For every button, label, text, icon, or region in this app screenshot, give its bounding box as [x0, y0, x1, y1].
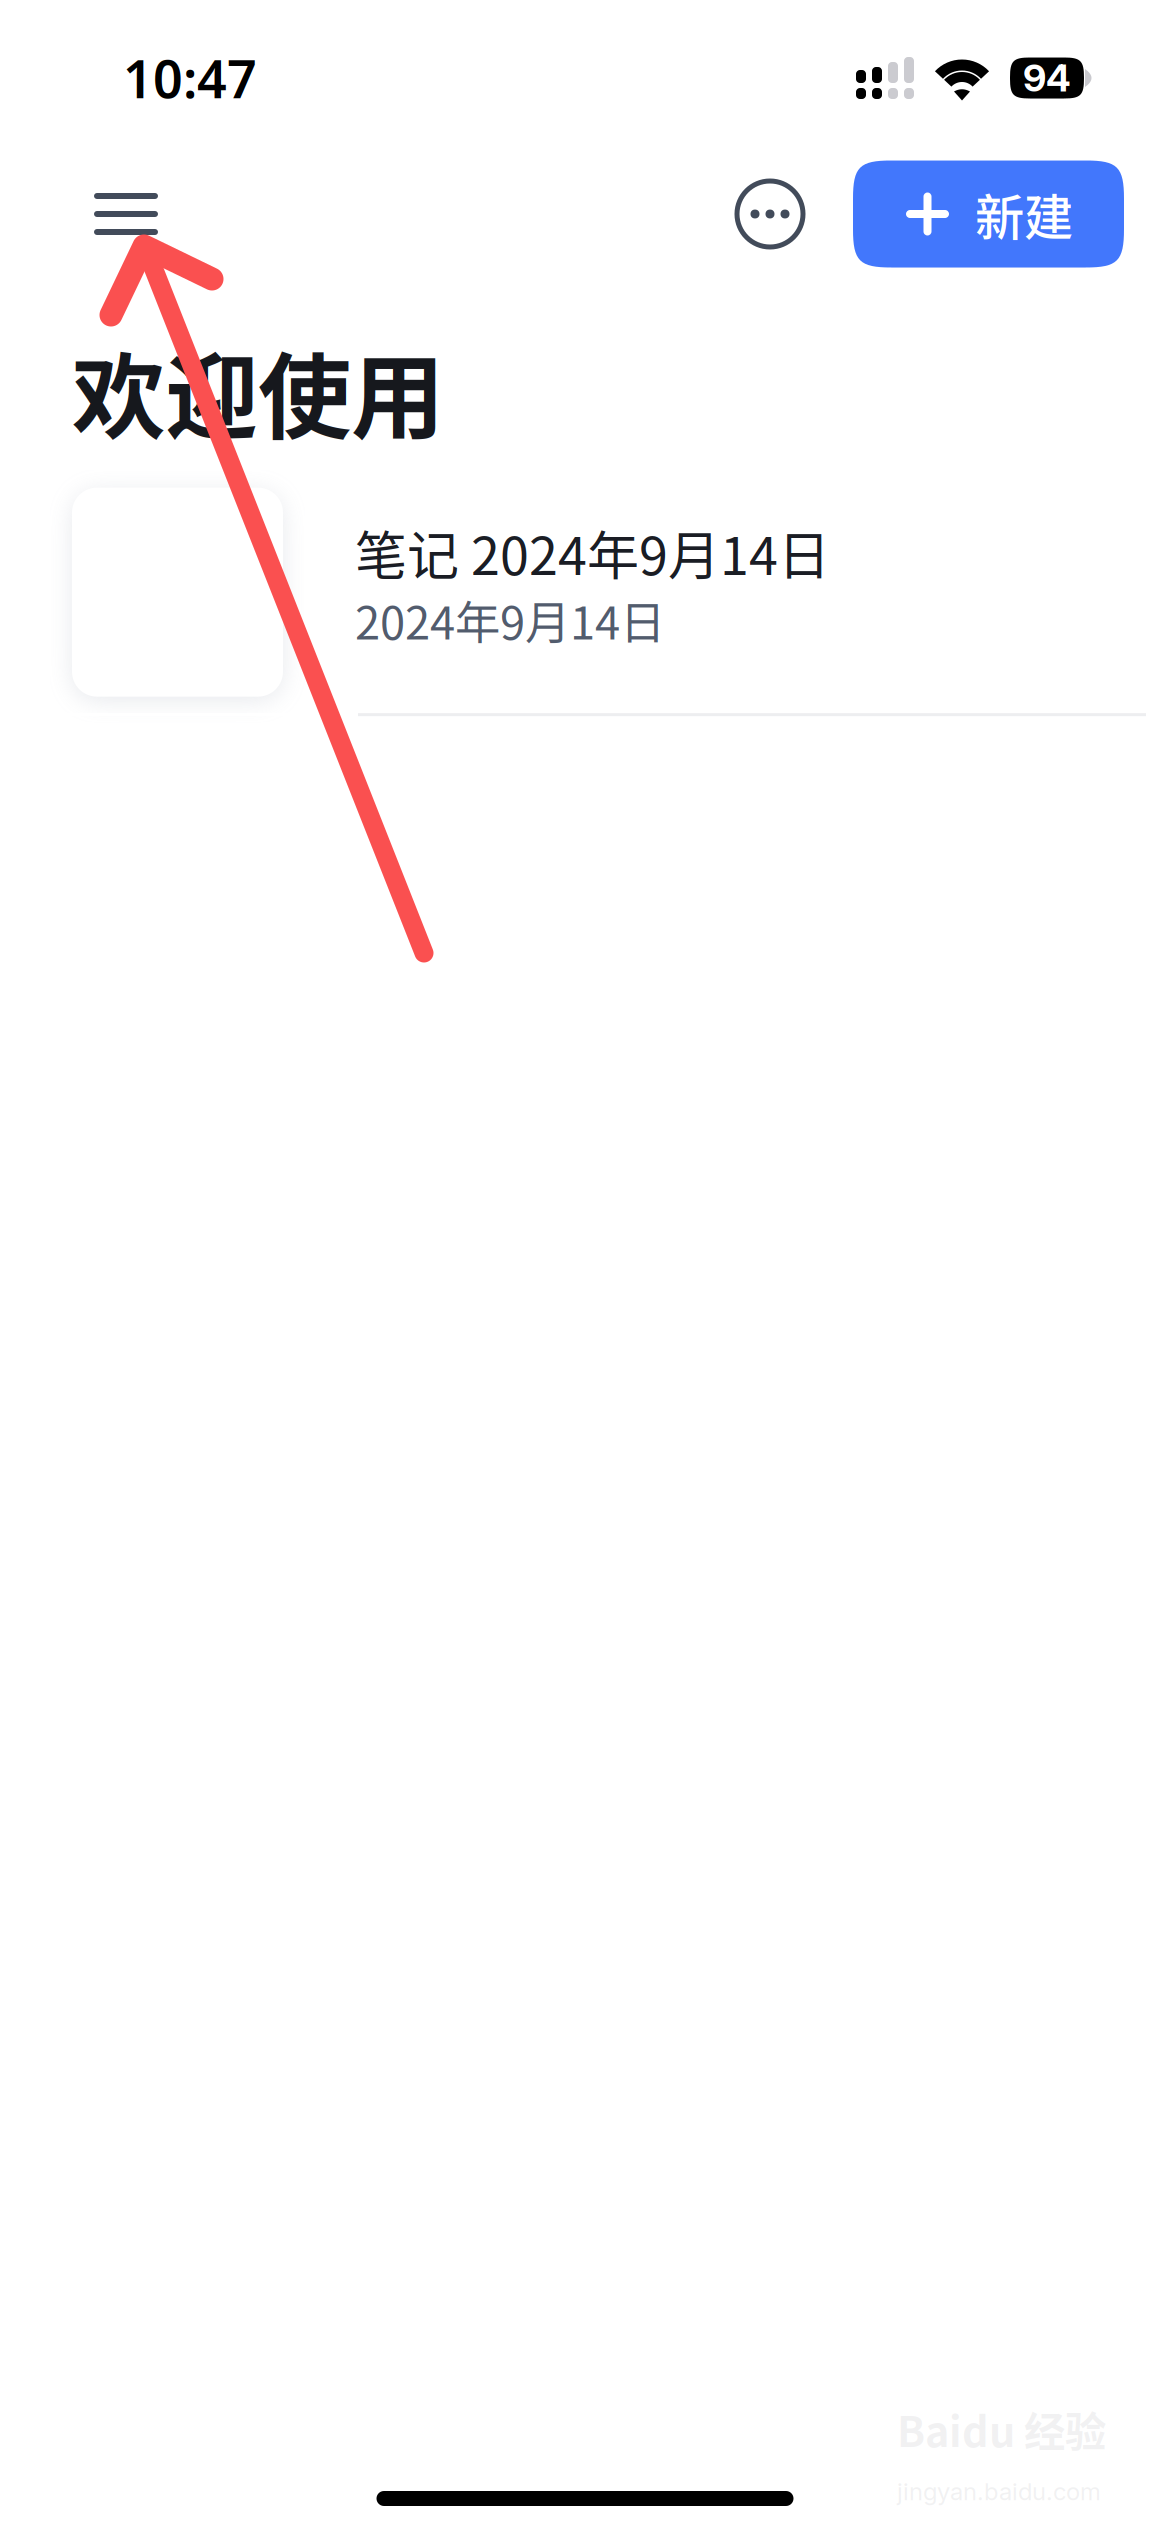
button[interactable]: 笔记 2024年9月14日 — [0, 471, 1170, 716]
button[interactable]: 菜单 — [72, 161, 180, 267]
staticText: Baidu 经验 — [897, 2399, 1106, 2459]
staticText: jingyan.baidu.com — [897, 2477, 1101, 2506]
staticText: 笔记 2024年9月14日 — [355, 515, 830, 590]
staticText: 新建 — [975, 178, 1073, 250]
staticText: 欢迎使用 — [72, 323, 444, 458]
button[interactable]: 更多 — [737, 181, 803, 247]
staticText: 10:47 — [123, 43, 257, 113]
button[interactable]: 新建 — [853, 160, 1124, 267]
staticText: 94 — [1023, 55, 1071, 101]
staticText: 2024年9月14日 — [355, 587, 665, 652]
